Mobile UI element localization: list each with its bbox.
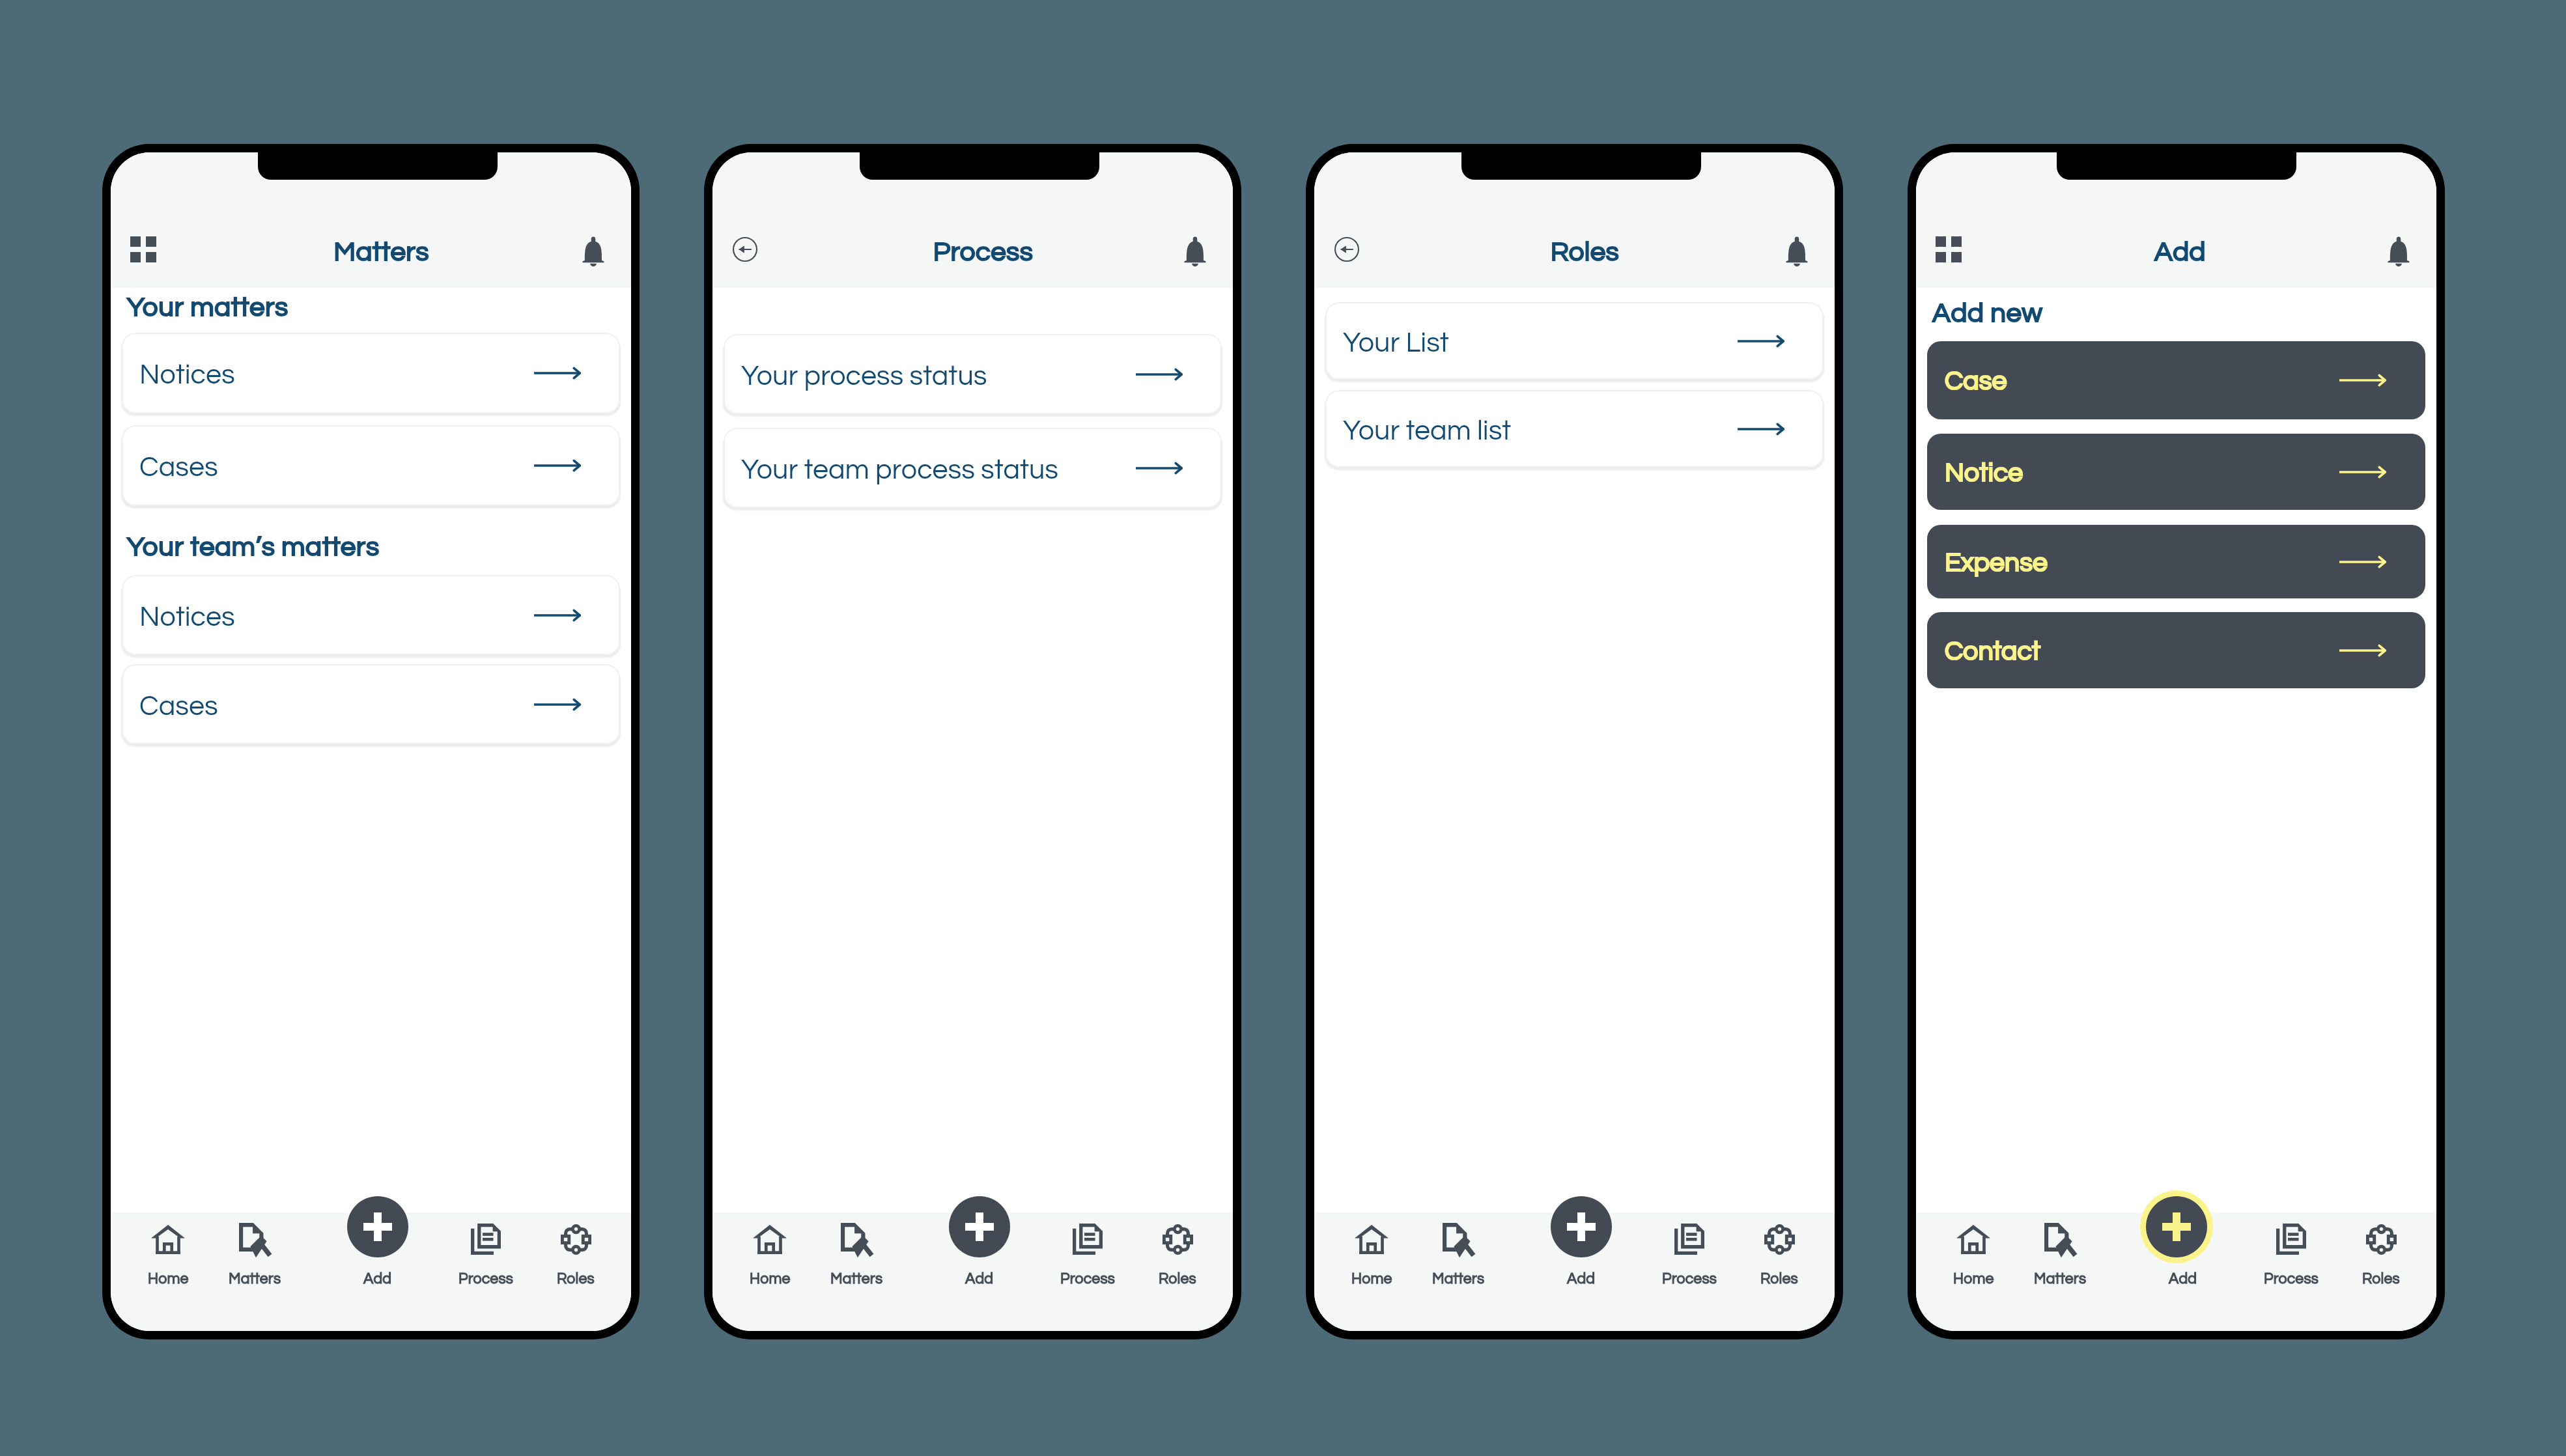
staticText: Notices [139,603,235,632]
button[interactable]: Back [722,226,768,273]
staticText: Add [1567,1271,1596,1287]
button[interactable]: Home [1323,1212,1420,1331]
button[interactable]: Home [1925,1212,2022,1331]
staticText: Add [363,1271,392,1287]
button[interactable]: Add [347,1196,408,1257]
staticText: Add [2169,1271,2197,1287]
staticText: Add new [1932,300,2043,328]
staticText: Roles [1325,238,1835,266]
button[interactable]: Process [1039,1212,1136,1331]
staticText: Roles [1760,1271,1798,1287]
staticText: Process [458,1271,513,1287]
button[interactable]: Cases [122,425,620,506]
staticText: Roles [1760,1271,1798,1287]
staticText: Your matters [127,294,289,322]
button[interactable]: Your team process status [724,428,1222,508]
button[interactable]: Notice [1927,434,2425,510]
staticText: Cases [139,453,218,482]
staticText: Process [1060,1271,1115,1287]
button[interactable]: Notices [122,575,620,655]
staticText: Matters [830,1271,883,1287]
staticText: Process [2264,1271,2319,1287]
staticText: Process [1662,1271,1717,1287]
staticText: Add [1920,238,2436,266]
button[interactable]: Roles [527,1212,625,1331]
staticText: Your team’s matters [127,533,380,561]
button[interactable]: Roles [1129,1212,1226,1331]
staticText: Roles [1159,1271,1196,1287]
staticText: Process [723,238,1233,266]
staticText: Notice [1945,459,2023,486]
button[interactable]: Add [2140,1190,2213,1263]
button[interactable]: Contact [1927,612,2425,688]
staticText: Matters [121,238,631,266]
button[interactable]: Notifications [1773,229,1820,275]
staticText: Matters [1432,1271,1485,1287]
staticText: Add [2169,1271,2197,1287]
staticText: Roles [557,1271,595,1287]
button[interactable]: Your List [1325,302,1824,380]
button[interactable]: Roles [2332,1212,2430,1331]
staticText: Your team list [1343,417,1512,445]
staticText: Your matters [127,294,289,322]
staticText: Roles [1325,238,1835,266]
staticText: Expense [1945,549,2048,576]
button[interactable]: Process [437,1212,535,1331]
staticText: Home [750,1271,791,1287]
button[interactable]: Home [721,1212,819,1331]
button[interactable]: Home [119,1212,217,1331]
staticText: Contact [1945,637,2041,665]
staticText: Add [1920,238,2436,266]
button[interactable]: Matters [2011,1212,2109,1331]
button[interactable]: Cases [122,664,620,744]
staticText: Home [148,1271,189,1287]
staticText: Home [1351,1271,1392,1287]
staticText: Your List [1343,329,1449,357]
staticText: Matters [1432,1271,1485,1287]
button[interactable]: Add [949,1196,1010,1257]
staticText: Notice [1945,459,2023,486]
staticText: Case [1945,367,2007,395]
staticText: Matters [229,1271,281,1287]
button[interactable]: Case [1927,341,2425,419]
staticText: Process [723,238,1233,266]
button[interactable]: Matters [808,1212,905,1331]
button[interactable]: Your process status [724,334,1222,414]
staticText: Cases [139,692,218,721]
staticText: Roles [2362,1271,2400,1287]
button[interactable]: Matters [1409,1212,1507,1331]
staticText: Process [1060,1271,1115,1287]
button[interactable]: Roles [1730,1212,1828,1331]
staticText: Home [148,1271,189,1287]
button[interactable]: Expense [1927,525,2425,598]
button[interactable]: Back [1323,226,1370,273]
button[interactable]: Menu [120,226,167,273]
button[interactable]: Process [1641,1212,1738,1331]
button[interactable]: Add [1551,1196,1612,1257]
button[interactable]: Notifications [2375,229,2422,275]
staticText: Add [363,1271,392,1287]
staticText: Your process status [741,362,987,391]
staticText: Home [1953,1271,1994,1287]
button[interactable]: Menu [1925,226,1972,273]
staticText: Matters [229,1271,281,1287]
staticText: Add [965,1271,994,1287]
staticText: Add [1567,1271,1596,1287]
button[interactable]: Notifications [1172,229,1219,275]
button[interactable]: Matters [206,1212,303,1331]
staticText: Roles [557,1271,595,1287]
staticText: Notices [139,361,235,389]
button[interactable]: Notices [122,333,620,413]
button[interactable]: Your team list [1325,390,1824,468]
staticText: Your team’s matters [127,533,380,561]
staticText: Matters [2034,1271,2087,1287]
staticText: Your team process status [741,456,1059,484]
staticText: Roles [2362,1271,2400,1287]
staticText: Case [1945,367,2007,395]
staticText: Home [1351,1271,1392,1287]
staticText: Add new [1932,300,2043,328]
staticText: Matters [121,238,631,266]
staticText: Process [1662,1271,1717,1287]
button[interactable]: Notifications [570,229,617,275]
button[interactable]: Process [2242,1212,2340,1331]
